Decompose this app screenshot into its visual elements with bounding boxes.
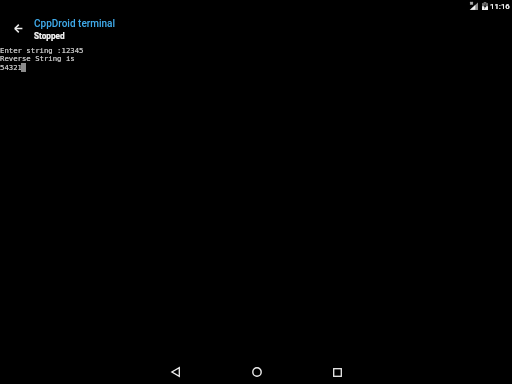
button[interactable]: Back (157, 354, 193, 384)
staticText: 11:16 (490, 2, 510, 11)
staticText: 54321 (0, 63, 22, 71)
staticText: Enter string :12345 (0, 46, 84, 54)
staticText: Stopped (34, 31, 65, 41)
button[interactable]: Navigate up (6, 16, 30, 40)
staticText: Reverse String is (0, 54, 75, 62)
staticText: CppDroid terminal (34, 18, 116, 30)
button[interactable]: Terminal output (0, 44, 512, 356)
button[interactable]: Home (239, 354, 275, 384)
button[interactable]: Recent apps (319, 354, 355, 384)
